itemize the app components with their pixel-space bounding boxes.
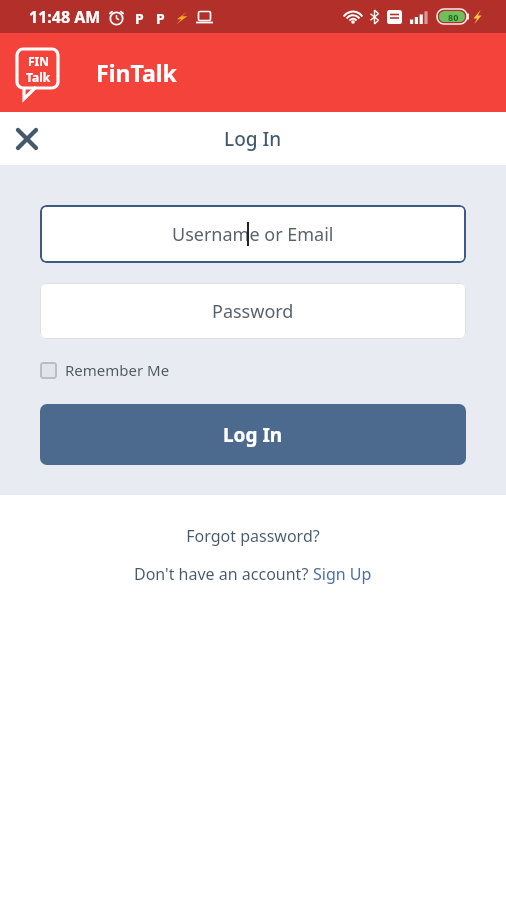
staticText: Password xyxy=(212,299,294,324)
button[interactable]: Sign Up xyxy=(313,563,372,585)
button[interactable]: Username or Email xyxy=(40,205,466,263)
staticText: Log In xyxy=(224,126,282,152)
staticText: Username or Email xyxy=(172,222,334,247)
button[interactable]: Log In xyxy=(40,404,466,465)
staticText: Log In xyxy=(223,422,283,448)
button[interactable]: Remember Me xyxy=(40,360,170,380)
staticText: P xyxy=(156,9,165,25)
staticText: Don't have an account? xyxy=(134,563,313,585)
staticText: Talk xyxy=(26,69,51,85)
button[interactable] xyxy=(17,129,37,149)
button[interactable]: Forgot password? xyxy=(0,525,506,547)
staticText: P xyxy=(135,9,144,25)
staticText: FIN xyxy=(28,53,50,69)
staticText: FinTalk xyxy=(96,57,177,88)
staticText: Remember Me xyxy=(65,360,170,380)
staticText: 11:48 AM xyxy=(29,6,101,28)
staticText: 80 xyxy=(448,11,459,23)
button[interactable]: Password xyxy=(40,283,466,339)
